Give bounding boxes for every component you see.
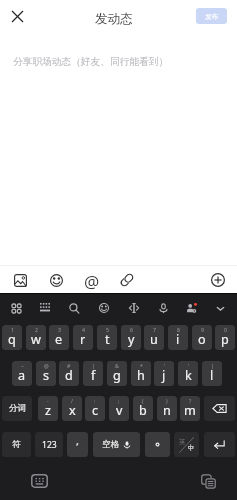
staticText: # bbox=[67, 362, 71, 369]
staticText: s bbox=[43, 367, 50, 384]
button[interactable]: v bbox=[109, 396, 129, 421]
staticText: f bbox=[91, 367, 96, 384]
button[interactable]: Enter bbox=[204, 432, 235, 457]
button[interactable]: p bbox=[215, 325, 235, 350]
staticText: u bbox=[150, 331, 158, 348]
staticText: n bbox=[163, 402, 171, 419]
staticText: p bbox=[221, 331, 229, 348]
staticText: 3 bbox=[58, 326, 61, 333]
staticText: 6 bbox=[130, 326, 133, 333]
staticText: 9 bbox=[201, 326, 204, 333]
button[interactable]: b bbox=[133, 396, 153, 421]
button[interactable]: j bbox=[154, 361, 174, 386]
button[interactable]: y bbox=[121, 325, 141, 350]
button[interactable]: Hide keyboard bbox=[207, 296, 233, 320]
button[interactable]: g bbox=[107, 361, 127, 386]
staticText: ; bbox=[118, 397, 120, 404]
staticText: ’ bbox=[164, 362, 165, 369]
staticText: y bbox=[128, 331, 135, 348]
button[interactable]: Input settings bbox=[178, 296, 204, 320]
button[interactable]: Voice input bbox=[150, 296, 176, 320]
button[interactable]: 发布 bbox=[196, 8, 227, 24]
button[interactable]: t bbox=[97, 325, 117, 350]
button[interactable]: k bbox=[178, 361, 198, 386]
staticText: 英 bbox=[179, 438, 186, 446]
button[interactable]: Emoji bbox=[42, 266, 70, 294]
button[interactable]: f bbox=[83, 361, 103, 386]
staticText: 中 bbox=[188, 444, 195, 452]
button[interactable]: u bbox=[144, 325, 164, 350]
staticText: 发布 bbox=[205, 12, 219, 21]
staticText: 4 bbox=[82, 326, 85, 333]
staticText: d bbox=[65, 367, 73, 384]
button[interactable]: Add photo bbox=[6, 266, 34, 294]
staticText: ~ bbox=[21, 362, 24, 369]
staticText: 分享职场动态（好友、同行能看到） bbox=[13, 56, 168, 68]
button[interactable]: Clipboard bbox=[197, 472, 219, 490]
button[interactable]: Backspace bbox=[204, 396, 235, 421]
button[interactable]: 123 bbox=[35, 432, 63, 457]
staticText: h bbox=[137, 367, 145, 384]
staticText: ‘ bbox=[188, 362, 189, 369]
staticText: 0 bbox=[224, 326, 227, 333]
button[interactable]: Switch keyboard bbox=[28, 472, 50, 490]
button[interactable]: Search bbox=[61, 296, 87, 320]
button[interactable]: x bbox=[62, 396, 82, 421]
button[interactable]: z bbox=[38, 396, 58, 421]
button[interactable]: d bbox=[59, 361, 79, 386]
staticText: q bbox=[8, 331, 16, 348]
staticText: r bbox=[80, 331, 86, 348]
staticText: v bbox=[116, 402, 123, 419]
staticText: 8 bbox=[177, 326, 180, 333]
button[interactable]: r bbox=[73, 325, 93, 350]
staticText: i bbox=[176, 331, 180, 348]
staticText: z bbox=[45, 402, 51, 419]
button[interactable]: m bbox=[180, 396, 200, 421]
staticText: x bbox=[69, 402, 76, 419]
button[interactable]: 空格 bbox=[93, 432, 140, 457]
staticText: 符 bbox=[12, 439, 21, 450]
staticText: k bbox=[185, 367, 192, 384]
button[interactable]: 分词 bbox=[2, 396, 32, 421]
button[interactable]: Comma bbox=[67, 432, 88, 457]
button[interactable]: e bbox=[49, 325, 69, 350]
button[interactable]: Period bbox=[145, 432, 170, 457]
button[interactable]: 符 bbox=[2, 432, 31, 457]
staticText: 分词 bbox=[9, 403, 26, 414]
staticText: ( bbox=[142, 397, 144, 404]
button[interactable]: n bbox=[157, 396, 177, 421]
button[interactable]: h bbox=[131, 361, 151, 386]
button[interactable]: More options bbox=[204, 266, 232, 294]
staticText: 发动态 bbox=[95, 11, 133, 27]
staticText: | bbox=[92, 362, 95, 369]
staticText: & bbox=[115, 362, 119, 369]
staticText: j bbox=[162, 367, 166, 384]
button[interactable]: o bbox=[192, 325, 212, 350]
button[interactable]: Emoji bbox=[91, 296, 117, 320]
staticText: 5 bbox=[106, 326, 109, 333]
button[interactable]: s bbox=[36, 361, 56, 386]
staticText: @ bbox=[44, 362, 49, 369]
staticText: m bbox=[184, 402, 196, 419]
button[interactable]: Mention someone bbox=[78, 266, 106, 294]
staticText: 1 bbox=[11, 326, 14, 333]
button[interactable]: Keyboard layout bbox=[32, 296, 58, 320]
button[interactable]: a bbox=[12, 361, 32, 386]
button[interactable]: Close bbox=[6, 5, 28, 27]
button[interactable]: Apps bbox=[3, 296, 29, 320]
button[interactable]: w bbox=[26, 325, 46, 350]
staticText: | bbox=[211, 362, 214, 369]
button[interactable]: Move cursor bbox=[121, 296, 147, 320]
staticText: / bbox=[71, 397, 73, 404]
staticText: : bbox=[94, 397, 96, 404]
staticText: * bbox=[140, 362, 143, 369]
button[interactable]: l bbox=[202, 361, 222, 386]
button[interactable]: Switch English and Chinese bbox=[174, 432, 199, 457]
staticText: c bbox=[92, 402, 99, 419]
button[interactable]: c bbox=[85, 396, 105, 421]
button[interactable]: q bbox=[2, 325, 22, 350]
button[interactable]: i bbox=[168, 325, 188, 350]
staticText: w bbox=[31, 331, 41, 348]
staticText: e bbox=[55, 331, 63, 348]
button[interactable]: Insert link bbox=[113, 266, 141, 294]
